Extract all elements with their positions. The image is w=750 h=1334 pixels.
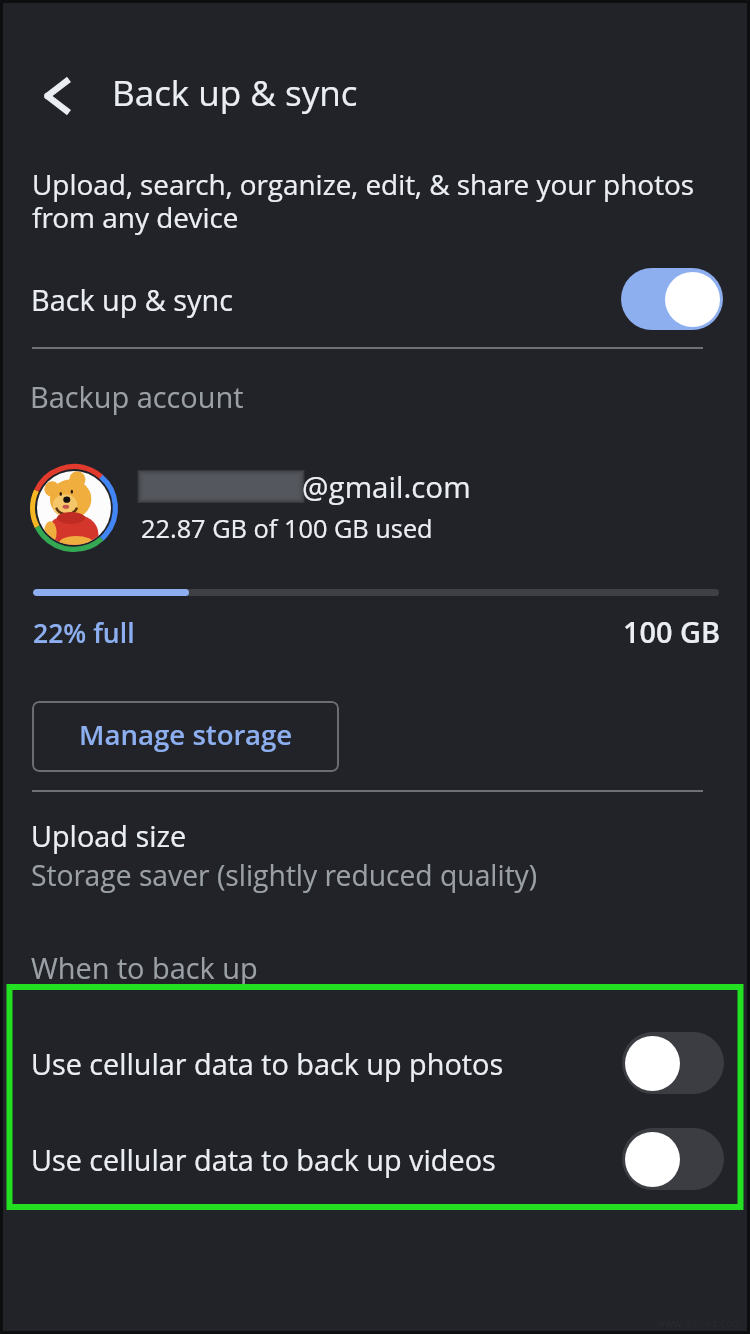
button[interactable]: Manage storage	[32, 701, 339, 772]
other: Account photo	[30, 464, 118, 552]
staticText: Back up & sync	[112, 69, 358, 117]
staticText: Storage saver (slightly reduced quality)	[31, 856, 538, 894]
staticText: @gmail.com	[302, 466, 471, 506]
staticText: Manage storage	[79, 715, 293, 753]
button[interactable]	[0, 452, 750, 564]
staticText: Backup account	[30, 377, 244, 416]
staticText: Upload, search, organize, edit, & share …	[32, 165, 722, 236]
button[interactable]: Navigate back	[32, 66, 92, 126]
button[interactable]: Back up & sync	[0, 258, 750, 340]
staticText: Back up & sync	[31, 280, 233, 319]
staticText: Upload size	[31, 816, 187, 855]
staticText: Use cellular data to back up videos	[31, 1140, 496, 1179]
button[interactable]: Switch, on	[621, 268, 723, 330]
staticText: 22.87 GB of 100 GB used	[141, 511, 433, 545]
button[interactable]: Switch, off	[622, 1128, 724, 1190]
button[interactable]: Use cellular data to back up videos	[0, 1111, 750, 1207]
button[interactable]: Switch, off	[622, 1032, 724, 1094]
button[interactable]: Use cellular data to back up photos	[0, 1015, 750, 1111]
staticText: Use cellular data to back up photos	[31, 1044, 504, 1083]
staticText: When to back up	[31, 948, 258, 987]
button[interactable]	[0, 800, 750, 908]
staticText: 100 GB	[623, 612, 721, 651]
staticText: 22% full	[33, 615, 135, 651]
